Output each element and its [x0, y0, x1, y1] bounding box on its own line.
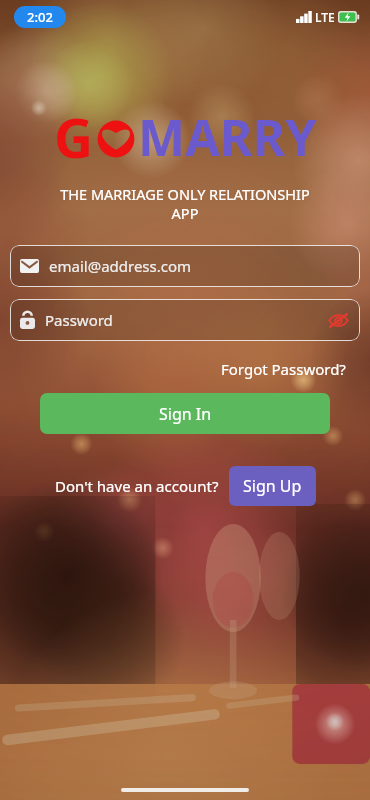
staticText: THE MARRIAGE ONLY RELATIONSHIP APP: [18, 184, 352, 223]
staticText: LTE: [315, 9, 335, 25]
staticText: email@address.com: [49, 256, 350, 276]
staticText: 2:02: [27, 8, 53, 26]
staticText: Sign Up: [243, 475, 302, 497]
staticText: Sign In: [159, 403, 212, 425]
button[interactable]: Sign Up: [229, 466, 316, 506]
staticText: Password: [45, 310, 326, 330]
button[interactable]: Sign In: [40, 393, 330, 434]
button[interactable]: Show password: [326, 308, 350, 332]
staticText: MARRY: [138, 103, 317, 171]
button[interactable]: Password: [10, 299, 360, 341]
button[interactable]: Forgot Password?: [217, 355, 350, 383]
staticText: G: [54, 100, 94, 174]
button[interactable]: email@address.com: [10, 245, 360, 287]
staticText: Don't have an account?: [55, 476, 219, 496]
